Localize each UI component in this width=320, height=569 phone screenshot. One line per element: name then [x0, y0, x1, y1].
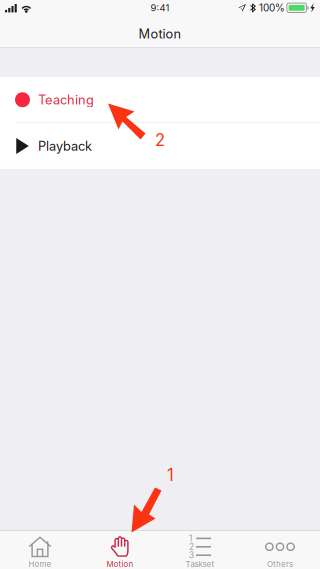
staticText: Taskset [185, 559, 214, 569]
staticText: Motion [106, 559, 133, 569]
staticText: Playback [38, 138, 92, 154]
staticText: 3 [189, 550, 194, 560]
staticText: Motion [138, 26, 181, 41]
staticText: 1 [167, 465, 174, 485]
button[interactable]: Others [240, 531, 320, 569]
staticText: Home [28, 559, 51, 569]
button[interactable]: Teaching [0, 77, 320, 123]
staticText: 100% [259, 2, 285, 14]
button[interactable]: Playback [0, 123, 320, 169]
staticText: Teaching [38, 92, 94, 107]
button[interactable]: Motion [80, 531, 160, 569]
button[interactable]: Home [0, 531, 80, 569]
staticText: 2 [189, 542, 194, 552]
staticText: 2 [155, 130, 165, 150]
staticText: 1 [189, 533, 192, 543]
button[interactable]: 1 [160, 531, 240, 569]
staticText: Others [267, 559, 293, 569]
staticText: 9:41 [150, 2, 169, 13]
